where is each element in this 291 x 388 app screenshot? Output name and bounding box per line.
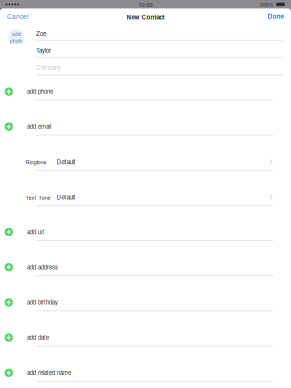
staticText: Ringtone — [26, 158, 47, 166]
button[interactable]: add date — [0, 310, 291, 346]
staticText: Taylor — [36, 46, 51, 55]
staticText: Default — [57, 192, 76, 201]
staticText: add url — [27, 227, 44, 236]
staticText: add date — [27, 333, 49, 341]
button[interactable]: add url — [0, 205, 291, 240]
staticText: Zoe — [36, 29, 46, 38]
button[interactable]: Text Tone — [0, 170, 291, 205]
button[interactable]: add email — [0, 99, 291, 135]
staticText: Cancel — [7, 11, 28, 21]
button[interactable]: Cancel — [4, 8, 31, 24]
staticText: 100% — [259, 0, 273, 8]
button[interactable]: Ringtone — [0, 135, 291, 170]
staticText: add related name — [27, 368, 71, 377]
staticText: Done — [267, 12, 284, 21]
staticText: add email — [27, 122, 51, 130]
staticText: add phone — [27, 87, 53, 95]
button[interactable]: add address — [0, 240, 291, 275]
staticText: add address — [27, 263, 58, 271]
button[interactable]: add phone — [0, 64, 291, 100]
staticText: 10:00 — [138, 0, 152, 8]
staticText: add birthday — [27, 298, 58, 306]
staticText: photo — [10, 37, 23, 44]
button[interactable]: Done — [264, 8, 287, 24]
staticText: add — [12, 30, 21, 37]
button[interactable]: add — [7, 28, 25, 46]
button[interactable]: add related name — [0, 346, 291, 381]
staticText: Company — [36, 62, 61, 71]
staticText: Default — [57, 157, 76, 166]
button[interactable]: add birthday — [0, 275, 291, 310]
staticText: New Contact — [126, 12, 164, 21]
staticText: Text Tone — [26, 193, 51, 201]
